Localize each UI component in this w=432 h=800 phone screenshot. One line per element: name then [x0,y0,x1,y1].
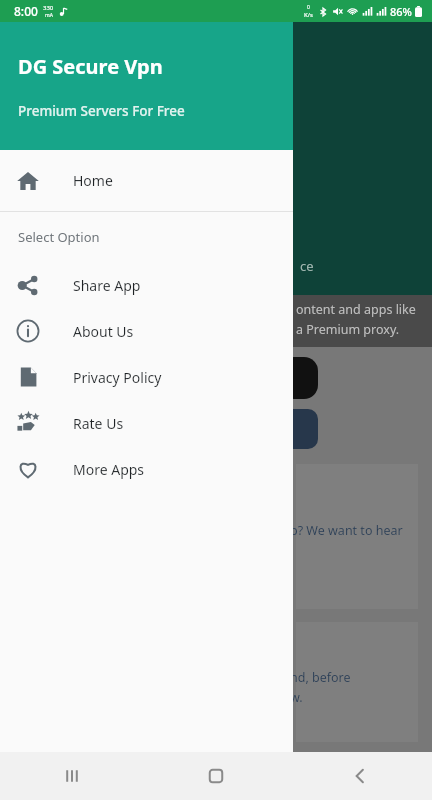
staticText: 330 [43,4,54,12]
staticText: More Apps [73,460,145,479]
button[interactable]: Privacy Policy [0,354,293,400]
staticText: 86% [390,4,412,19]
button[interactable]: Back [288,752,432,800]
staticText: DG Secure Vpn [18,53,163,80]
button[interactable]: Recents [0,752,144,800]
staticText: Rate Us [73,414,124,433]
staticText: nd, before [290,669,351,686]
staticText: ce [300,257,314,275]
button[interactable]: Share App [0,262,293,308]
staticText: Premium Servers For Free [18,102,185,120]
staticText: w. [290,689,303,706]
staticText: About Us [73,322,134,341]
staticText: Select Option [18,228,100,246]
button[interactable]: More Apps [0,446,293,492]
staticText: 0 [307,4,310,11]
button[interactable]: Home [144,752,288,800]
staticText: Privacy Policy [73,368,162,387]
staticText: 8:00 [14,3,38,19]
staticText: K/s [304,11,313,19]
staticText: Share App [73,276,141,295]
staticText: p? We want to hear [290,522,403,539]
staticText: a Premium proxy. [296,321,400,338]
button[interactable]: Rate Us [0,400,293,446]
staticText: ontent and apps like [296,301,416,318]
staticText: Home [73,171,113,190]
button[interactable]: Home [0,150,293,211]
staticText: mA [45,12,53,19]
button[interactable]: About Us [0,308,293,354]
